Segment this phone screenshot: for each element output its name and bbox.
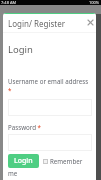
button[interactable]: Login	[8, 154, 39, 168]
staticText: 7:48 AM	[1, 0, 17, 5]
staticText: me	[8, 169, 18, 177]
button[interactable]: Login/ Register	[3, 14, 96, 32]
button[interactable]	[8, 99, 92, 116]
staticText: 100%	[89, 0, 100, 5]
button[interactable]: Close	[85, 17, 95, 27]
staticText: Login/ Register	[8, 18, 66, 29]
staticText: Remember	[50, 157, 83, 165]
button[interactable]	[8, 134, 92, 151]
button[interactable]: Remember me	[43, 159, 48, 164]
staticText: Password *	[8, 123, 42, 131]
staticText: Username or email address *	[8, 77, 92, 95]
staticText: Login	[8, 43, 33, 56]
staticText: Login	[14, 156, 33, 166]
